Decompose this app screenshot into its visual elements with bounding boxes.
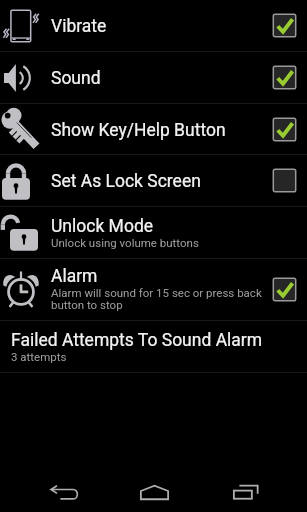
staticText: Show Key/Help Button bbox=[51, 120, 226, 141]
staticText: Vibrate bbox=[51, 16, 107, 37]
staticText: Alarm will sound for 15 sec or press bac… bbox=[51, 286, 262, 312]
staticText: Set As Lock Screen bbox=[51, 171, 201, 192]
staticText: Unlock using volume buttons bbox=[51, 236, 199, 249]
staticText: 3 attempts bbox=[11, 350, 67, 363]
staticText: Failed Attempts To Sound Alarm bbox=[11, 330, 263, 351]
button[interactable]: Back bbox=[45, 472, 83, 512]
button[interactable]: Show Key/Help Button bbox=[0, 104, 307, 154]
button[interactable]: Failed Attempts To Sound Alarm bbox=[0, 321, 307, 372]
staticText: Sound bbox=[51, 68, 101, 89]
button[interactable]: Set As Lock Screen bbox=[0, 155, 307, 206]
button[interactable]: Sound bbox=[0, 52, 307, 103]
button[interactable]: Vibrate bbox=[0, 0, 307, 51]
button[interactable]: Recent apps bbox=[228, 472, 266, 512]
button[interactable]: Unlock Mode bbox=[0, 207, 307, 258]
staticText: Unlock Mode bbox=[51, 216, 154, 237]
staticText: Alarm bbox=[51, 266, 98, 287]
button[interactable]: Alarm bbox=[0, 259, 307, 320]
button[interactable]: Home bbox=[135, 472, 173, 512]
